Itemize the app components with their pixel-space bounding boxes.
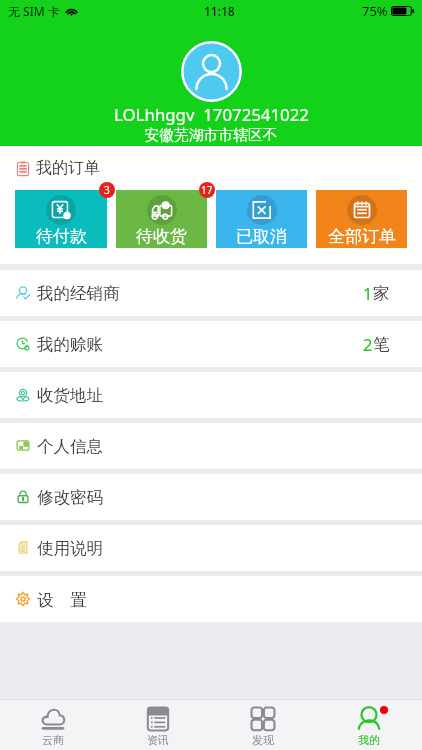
staticText: 17 — [201, 183, 213, 197]
button[interactable]: 待收货 — [116, 190, 207, 248]
staticText: 发现 — [252, 733, 274, 747]
staticText: 我的 — [358, 733, 380, 747]
staticText: 已取消 — [236, 226, 287, 247]
button[interactable]: 修改密码 — [0, 474, 422, 520]
staticText: 75% — [362, 2, 388, 20]
button[interactable]: 全部订单 — [316, 190, 407, 248]
staticText: 家 — [373, 283, 390, 304]
staticText: 全部订单 — [328, 226, 396, 247]
staticText: 我的订单 — [36, 158, 100, 178]
staticText: 待付款 — [36, 226, 87, 247]
staticText: 安徽芜湖市市辖区不 — [144, 126, 278, 145]
staticText: 个人信息 — [37, 436, 103, 457]
button[interactable]: 已取消 — [216, 190, 307, 248]
staticText: 设 置 — [37, 588, 87, 611]
staticText: 使用说明 — [37, 538, 103, 559]
staticText: 我的赊账 — [37, 334, 103, 355]
button[interactable]: 资讯 — [105, 700, 210, 750]
button[interactable]: 使用说明 — [0, 525, 422, 571]
staticText: 笔 — [373, 334, 390, 355]
staticText: 1 — [363, 282, 373, 304]
button[interactable]: 我的经销商 — [0, 270, 422, 316]
staticText: LOLhhggv 17072541022 — [114, 103, 309, 126]
button[interactable]: 发现 — [210, 700, 316, 750]
staticText: 修改密码 — [37, 487, 103, 508]
staticText: 无 SIM 卡 — [8, 3, 60, 19]
button[interactable]: 收货地址 — [0, 372, 422, 418]
staticText: 11:18 — [204, 3, 235, 19]
staticText: 资讯 — [147, 733, 169, 747]
button[interactable]: 设 置 — [0, 576, 422, 622]
button[interactable]: 个人信息 — [0, 423, 422, 469]
staticText: 2 — [363, 333, 373, 355]
staticText: 3 — [104, 183, 110, 197]
staticText: 待收货 — [136, 226, 187, 247]
button[interactable]: 待付款 — [15, 190, 107, 248]
staticText: 我的经销商 — [37, 283, 120, 304]
button[interactable]: 云商 — [0, 700, 105, 750]
button[interactable]: 我的赊账 — [0, 321, 422, 367]
staticText: 云商 — [42, 733, 64, 747]
other: Unread notifications — [380, 706, 388, 714]
button[interactable]: Avatar — [181, 41, 242, 102]
staticText: 收货地址 — [37, 385, 103, 406]
button[interactable]: Unread notifications — [316, 700, 422, 750]
